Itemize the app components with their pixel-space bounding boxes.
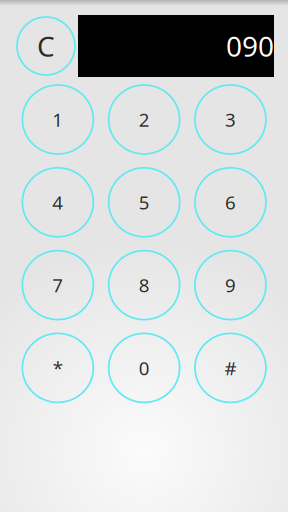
button[interactable]: 2 [109, 85, 180, 154]
button[interactable]: 8 [109, 251, 180, 320]
button[interactable]: 1 [22, 85, 93, 154]
button[interactable]: 9 [195, 251, 266, 320]
staticText: 1 [52, 107, 63, 132]
button[interactable]: 4 [22, 168, 93, 237]
staticText: 4 [52, 190, 63, 215]
staticText: * [53, 355, 63, 380]
staticText: 0 [139, 355, 150, 380]
button[interactable]: 0 [109, 333, 180, 402]
button[interactable]: 6 [195, 168, 266, 237]
button[interactable]: * [22, 333, 93, 402]
staticText: 2 [139, 107, 150, 132]
staticText: 5 [139, 190, 150, 215]
button[interactable]: 3 [195, 85, 266, 154]
button[interactable]: 7 [22, 251, 93, 320]
staticText: 090 [226, 27, 274, 65]
staticText: # [224, 355, 236, 380]
staticText: 3 [225, 107, 236, 132]
staticText: 7 [52, 273, 63, 297]
button[interactable]: C [17, 17, 75, 75]
button[interactable]: 5 [109, 168, 180, 237]
staticText: C [37, 27, 55, 65]
staticText: 8 [139, 273, 150, 297]
staticText: 9 [225, 273, 236, 297]
staticText: 6 [225, 190, 236, 215]
button[interactable]: # [195, 333, 266, 402]
